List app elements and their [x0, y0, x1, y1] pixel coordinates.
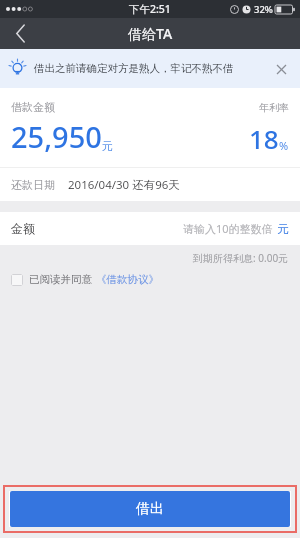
button[interactable]: 借出 [10, 491, 290, 527]
staticText: 借给TA [128, 24, 173, 43]
staticText: 借款金额 [11, 100, 55, 114]
button[interactable]: 《借款协议》 [96, 273, 159, 286]
staticText: 32% [254, 3, 273, 16]
staticText: 元 [102, 139, 113, 153]
staticText: 到期所得利息: 0.00元 [193, 251, 289, 265]
staticText: 2016/04/30 还有96天 [68, 177, 180, 193]
staticText: 年利率 [259, 101, 289, 114]
staticText: 借出 [136, 500, 164, 518]
button[interactable]: 金额 [0, 212, 300, 245]
staticText: 借出之前请确定对方是熟人，牢记不熟不借 [34, 62, 234, 75]
button[interactable]: 已阅读并同意 [0, 271, 300, 292]
staticText: 元 [277, 222, 289, 236]
staticText: 已阅读并同意 [29, 273, 92, 286]
staticText: 请输入10的整数倍 [183, 221, 273, 236]
staticText: % [279, 138, 289, 153]
staticText: 还款日期 [11, 178, 55, 192]
staticText: 25,950 [11, 117, 102, 156]
staticText: 下午2:51 [129, 2, 171, 16]
button[interactable]: 关闭 [265, 53, 297, 85]
button[interactable]: 返回 [0, 18, 42, 49]
staticText: 18 [249, 121, 279, 156]
staticText: 金额 [11, 221, 35, 236]
